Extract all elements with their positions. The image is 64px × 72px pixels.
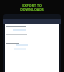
staticText: EXPORT TO DOWNLOADS — [0, 3, 64, 12]
